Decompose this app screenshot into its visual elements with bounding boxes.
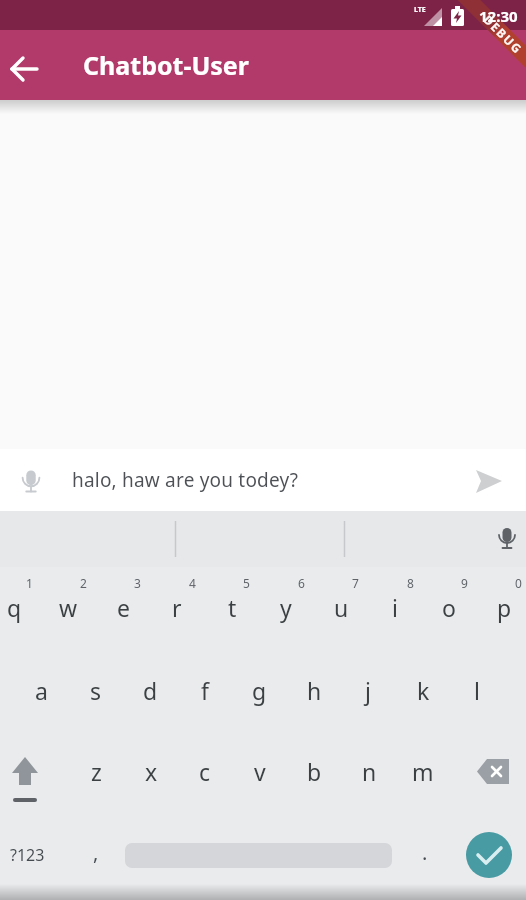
staticText: h <box>307 675 322 706</box>
button[interactable]: n <box>343 741 395 801</box>
button[interactable]: g <box>233 660 285 720</box>
staticText: . <box>422 839 428 866</box>
staticText: x <box>145 756 158 787</box>
staticText: z <box>91 756 102 787</box>
button[interactable]: b <box>288 741 340 801</box>
staticText: j <box>365 675 371 706</box>
button[interactable]: d <box>124 660 176 720</box>
button[interactable]: v <box>234 741 286 801</box>
staticText: Chatbot-User <box>83 48 249 82</box>
staticText: g <box>252 675 267 706</box>
staticText: 7 <box>352 575 359 591</box>
staticText: 1 <box>26 575 33 591</box>
staticText: 2 <box>80 575 87 591</box>
button[interactable]: halo, haw are you todey? <box>0 449 526 511</box>
staticText: n <box>362 756 377 787</box>
button[interactable]: c <box>179 741 231 801</box>
staticText: 9 <box>461 575 468 591</box>
button[interactable]: l <box>451 660 503 720</box>
staticText: s <box>90 675 102 706</box>
staticText: 4 <box>189 575 196 591</box>
staticText: 5 <box>243 575 250 591</box>
button[interactable]: i <box>369 577 421 637</box>
button[interactable]: r <box>151 577 203 637</box>
button[interactable]: o <box>423 577 475 637</box>
staticText: halo, haw are you todey? <box>72 467 299 493</box>
button[interactable]: q <box>0 577 40 637</box>
staticText: r <box>172 592 182 623</box>
button[interactable] <box>466 832 512 878</box>
staticText: LTE <box>414 5 426 15</box>
button[interactable]: m <box>397 741 449 801</box>
staticText: DEBUG <box>480 11 526 57</box>
staticText: 6 <box>298 575 305 591</box>
button[interactable]: a <box>15 660 67 720</box>
button[interactable]: s <box>70 660 122 720</box>
button[interactable]: j <box>342 660 394 720</box>
staticText: p <box>497 592 512 623</box>
staticText: w <box>59 592 78 623</box>
staticText: a <box>35 675 48 706</box>
staticText: k <box>417 675 430 706</box>
staticText: i <box>392 592 398 623</box>
staticText: f <box>201 675 209 706</box>
staticText: u <box>334 592 349 623</box>
staticText: 0 <box>515 575 522 591</box>
button[interactable]: u <box>315 577 367 637</box>
staticText: v <box>254 756 266 787</box>
staticText: q <box>7 592 22 623</box>
staticText: y <box>280 592 292 623</box>
staticText: 12:30 <box>479 6 518 26</box>
button[interactable]: p <box>478 577 526 637</box>
button[interactable]: w <box>42 577 94 637</box>
button[interactable]: f <box>179 660 231 720</box>
staticText: t <box>228 592 237 623</box>
staticText: o <box>442 592 456 623</box>
staticText: m <box>412 756 434 787</box>
staticText: e <box>117 592 130 623</box>
staticText: 3 <box>134 575 141 591</box>
button[interactable]: t <box>206 577 258 637</box>
button[interactable]: e <box>97 577 149 637</box>
button[interactable]: x <box>125 741 177 801</box>
staticText: , <box>93 839 99 866</box>
staticText: 8 <box>407 575 414 591</box>
staticText: c <box>199 756 211 787</box>
button[interactable]: z <box>70 741 122 801</box>
button[interactable]: h <box>288 660 340 720</box>
staticText: ?123 <box>10 844 45 866</box>
button[interactable]: y <box>260 577 312 637</box>
staticText: b <box>307 756 322 787</box>
staticText: d <box>143 675 158 706</box>
button[interactable] <box>4 49 44 89</box>
staticText: l <box>474 675 480 706</box>
button[interactable]: k <box>397 660 449 720</box>
